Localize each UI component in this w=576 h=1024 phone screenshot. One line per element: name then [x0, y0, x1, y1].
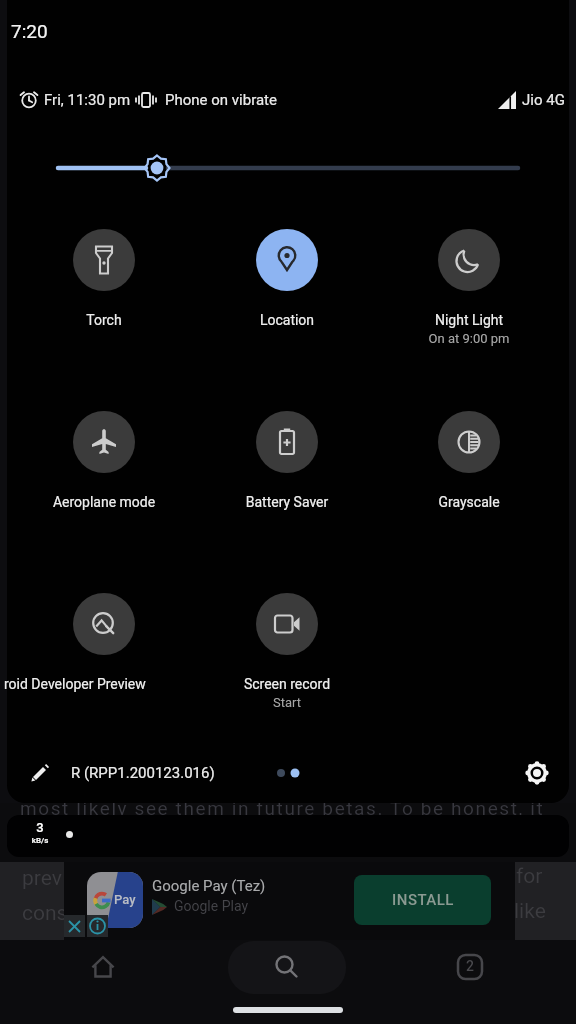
staticText: Google Play — [174, 898, 249, 914]
button[interactable] — [524, 760, 550, 786]
staticText: Night Light — [379, 312, 559, 328]
button[interactable] — [438, 411, 500, 473]
button[interactable] — [64, 915, 85, 937]
button[interactable]: 2 — [446, 943, 494, 991]
staticText: R (RPP1.200123.016) — [71, 764, 215, 782]
staticText: Torch — [14, 312, 194, 328]
button[interactable] — [64, 862, 515, 940]
button[interactable] — [256, 229, 318, 291]
staticText: Grayscale — [379, 494, 559, 510]
staticText: On at 9:00 pm — [379, 331, 559, 346]
staticText: 2 — [446, 958, 494, 974]
button[interactable] — [29, 762, 51, 784]
button[interactable] — [73, 593, 135, 655]
button[interactable] — [263, 943, 311, 991]
staticText: most likely see them in future betas. To… — [20, 797, 545, 819]
staticText: roid Developer Preview — [4, 676, 146, 692]
staticText: Pay — [114, 892, 136, 907]
staticText: kB/s — [26, 836, 54, 845]
staticText: Screen record — [197, 676, 377, 692]
button[interactable] — [73, 411, 135, 473]
staticText: prev — [22, 866, 62, 891]
button[interactable] — [256, 593, 318, 655]
staticText: Battery Saver — [197, 494, 377, 510]
staticText: 3 — [30, 820, 50, 835]
button[interactable] — [438, 229, 500, 291]
staticText: Start — [197, 695, 377, 710]
staticText: Google Pay (Tez) — [152, 877, 266, 895]
staticText: Location — [197, 312, 377, 328]
button[interactable] — [73, 229, 135, 291]
staticText: INSTALL — [392, 891, 454, 909]
staticText: Fri, 11:30 pm — [44, 91, 131, 109]
staticText: Jio 4G — [522, 91, 565, 109]
staticText: Aeroplane mode — [14, 494, 194, 510]
staticText: for — [516, 864, 543, 889]
button[interactable] — [87, 915, 108, 937]
staticText: Phone on vibrate — [165, 91, 277, 109]
staticText: like — [514, 899, 546, 924]
staticText: 7:20 — [11, 20, 48, 42]
button[interactable] — [142, 153, 172, 183]
staticText: cons — [22, 901, 68, 926]
button[interactable] — [79, 943, 127, 991]
button[interactable]: INSTALL — [354, 875, 491, 925]
button[interactable] — [256, 411, 318, 473]
